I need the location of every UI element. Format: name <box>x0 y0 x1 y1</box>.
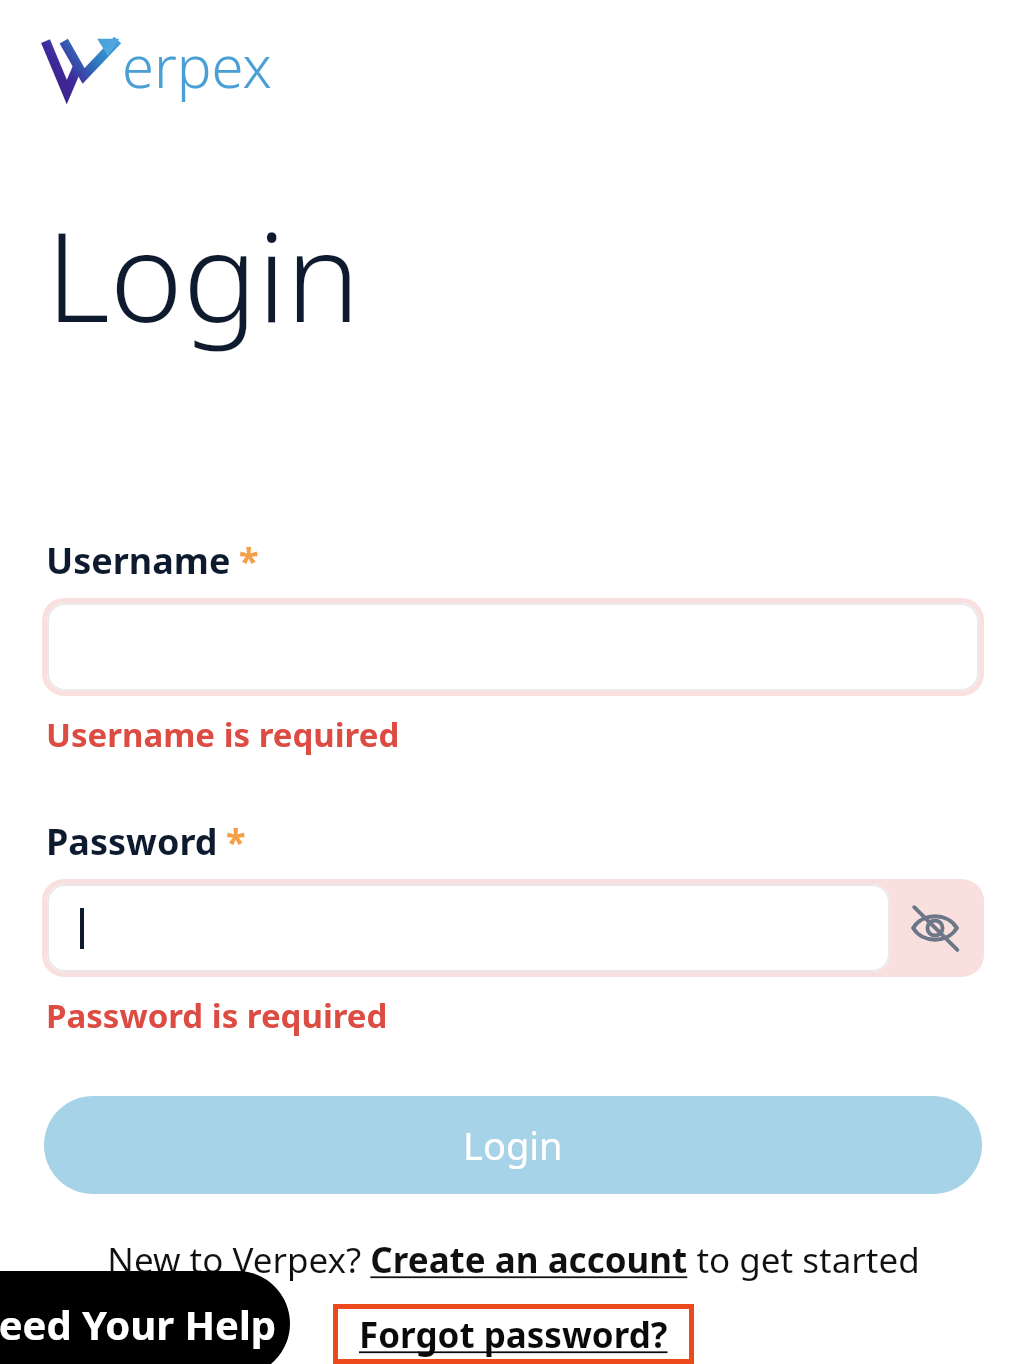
staticText: Password is required <box>46 993 388 1038</box>
button[interactable]: New to Verpex? Create an account to get … <box>107 1236 920 1284</box>
staticText: erpex <box>122 26 272 105</box>
button[interactable]: Forgot password? <box>359 1311 668 1357</box>
staticText: We Need Your Help <box>0 1297 277 1351</box>
staticText: Username <box>46 536 231 585</box>
other: Verpex logo <box>44 35 120 97</box>
staticText: * <box>239 536 259 585</box>
button[interactable]: We Need Your Help <box>0 1271 290 1364</box>
staticText: * <box>226 817 246 866</box>
staticText: Username is required <box>46 712 400 757</box>
staticText: Login <box>46 189 360 358</box>
staticText: Forgot password? <box>359 1311 668 1357</box>
button[interactable]: Login <box>44 1096 982 1194</box>
button[interactable]: Show password <box>891 884 979 972</box>
button[interactable] <box>47 884 890 972</box>
staticText: Login <box>463 1119 563 1171</box>
button[interactable] <box>47 603 979 691</box>
staticText: Password <box>46 817 218 866</box>
